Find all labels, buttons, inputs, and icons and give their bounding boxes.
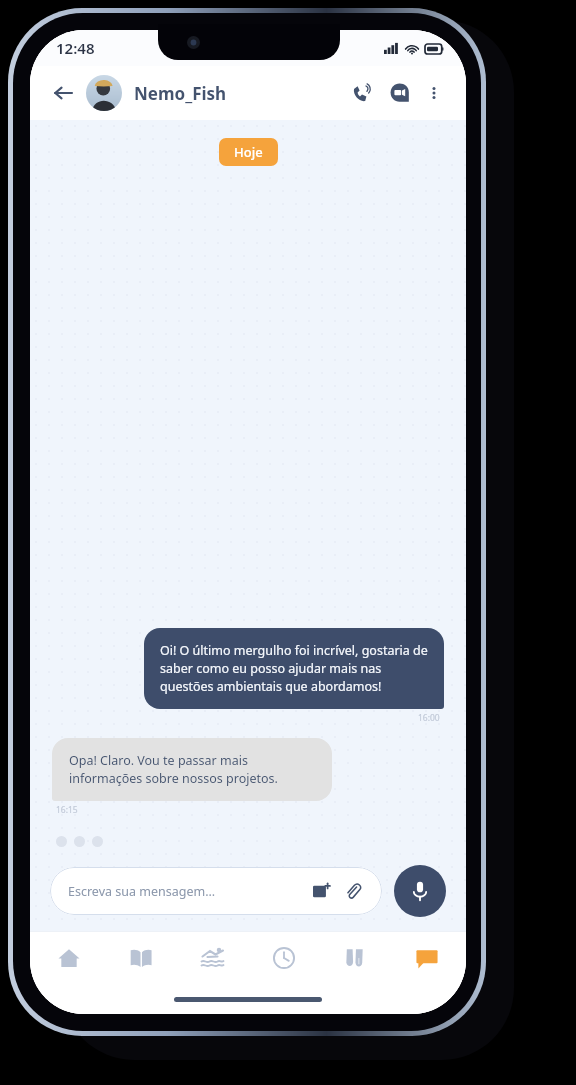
button[interactable]: Guide (116, 933, 166, 983)
staticText: 16:00 (418, 712, 440, 724)
button[interactable]: Dives (187, 933, 237, 983)
button[interactable]: Gear (330, 933, 380, 983)
button[interactable]: Video call (384, 77, 416, 109)
button[interactable]: History (259, 933, 309, 983)
button[interactable]: Oi! O último mergulho foi incrível, gost… (144, 628, 444, 709)
button[interactable]: Attach file (342, 880, 364, 902)
button[interactable]: Home (44, 933, 94, 983)
button[interactable]: Back (48, 78, 78, 108)
button[interactable]: Profile photo (86, 75, 122, 111)
staticText: Nemo_Fish (134, 82, 227, 105)
button[interactable]: Voice call (346, 77, 378, 109)
button[interactable]: Escreva sua mensagem... (50, 867, 382, 915)
button[interactable]: Record voice message (394, 865, 446, 917)
button[interactable]: Hoje (219, 138, 278, 166)
staticText: Oi! O último mergulho foi incrível, gost… (160, 642, 428, 695)
staticText: Hoje (234, 143, 263, 161)
button[interactable]: Add image (310, 880, 332, 902)
staticText: 12:48 (56, 38, 95, 58)
staticText: 16:15 (56, 804, 78, 816)
button[interactable]: More options (420, 79, 448, 107)
staticText: Opa! Claro. Vou te passar mais informaçõ… (69, 752, 315, 787)
button[interactable]: Messages (402, 933, 452, 983)
button[interactable]: Opa! Claro. Vou te passar mais informaçõ… (52, 738, 332, 801)
staticText: Escreva sua mensagem... (68, 883, 216, 900)
